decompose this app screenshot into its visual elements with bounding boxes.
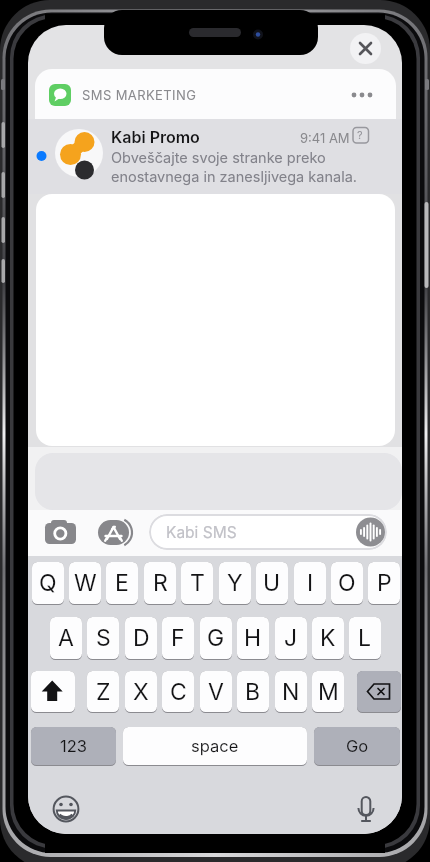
button[interactable]: M [312,671,344,712]
button[interactable] [368,789,396,817]
staticText: H [244,624,262,652]
staticText: D [133,624,150,652]
staticText: A [58,624,74,652]
button[interactable] [35,69,396,119]
staticText: M [318,678,339,706]
staticText: SMS MARKETING [82,87,197,103]
staticText: W [74,569,97,597]
button[interactable]: P [368,562,400,604]
button[interactable]: D [125,617,157,659]
staticText: B [245,678,261,706]
staticText: P [377,569,392,597]
staticText: X [133,678,149,706]
button[interactable]: Y [219,562,251,604]
button[interactable]: L [349,617,381,659]
button[interactable]: C [162,671,194,712]
button[interactable]: space [123,727,307,765]
staticText: T [190,569,205,597]
staticText: Q [39,569,57,597]
button[interactable]: Z [87,671,119,712]
button[interactable]: X [125,671,157,712]
button[interactable]: U [256,562,288,604]
staticText: 123 [60,736,87,756]
staticText: C [170,678,187,706]
button[interactable] [356,517,386,547]
button[interactable]: H [237,617,269,659]
staticText: F [171,624,185,652]
button[interactable]: I [294,562,326,604]
button[interactable]: V [200,671,232,712]
button[interactable] [99,515,133,549]
button[interactable] [28,119,402,194]
button[interactable]: W [69,562,101,604]
button[interactable]: F [162,617,194,659]
button[interactable]: K [312,617,344,659]
button[interactable] [350,33,381,64]
button[interactable]: B [237,671,269,712]
staticText: I [307,569,314,597]
button[interactable]: J [275,617,307,659]
button[interactable]: 123 [31,727,116,765]
button[interactable] [357,671,401,712]
button[interactable] [31,671,75,712]
staticText: O [338,569,356,597]
button[interactable]: T [181,562,213,604]
staticText: N [282,678,300,706]
staticText: E [115,569,129,597]
staticText: enostavnega in zanesljivega kanala. [111,168,357,186]
button[interactable] [46,519,80,547]
staticText: K [320,624,336,652]
button[interactable]: R [144,562,176,604]
button[interactable]: Q [32,562,64,604]
button[interactable]: S [87,617,119,659]
staticText: Kabi Promo [111,127,200,146]
staticText: R [153,569,168,597]
staticText: U [263,569,281,597]
button[interactable] [46,791,74,819]
staticText: Go [346,736,369,756]
button[interactable]: G [200,617,232,659]
button[interactable]: E [106,562,138,604]
staticText: J [284,624,298,652]
button[interactable]: O [331,562,363,604]
staticText: Kabi SMS [166,523,237,542]
staticText: space [191,736,239,756]
button[interactable]: N [275,671,307,712]
button[interactable]: A [50,617,82,659]
staticText: L [358,624,372,652]
staticText: S [96,624,111,652]
button[interactable] [149,514,387,550]
button[interactable]: Go [314,727,400,765]
staticText: Obveščajte svoje stranke preko [111,149,326,167]
staticText: V [208,678,224,706]
staticText: 9:41 AM [300,130,350,146]
staticText: ? [357,128,363,141]
staticText: Z [96,678,111,706]
staticText: G [207,624,225,652]
staticText: Y [227,569,243,597]
